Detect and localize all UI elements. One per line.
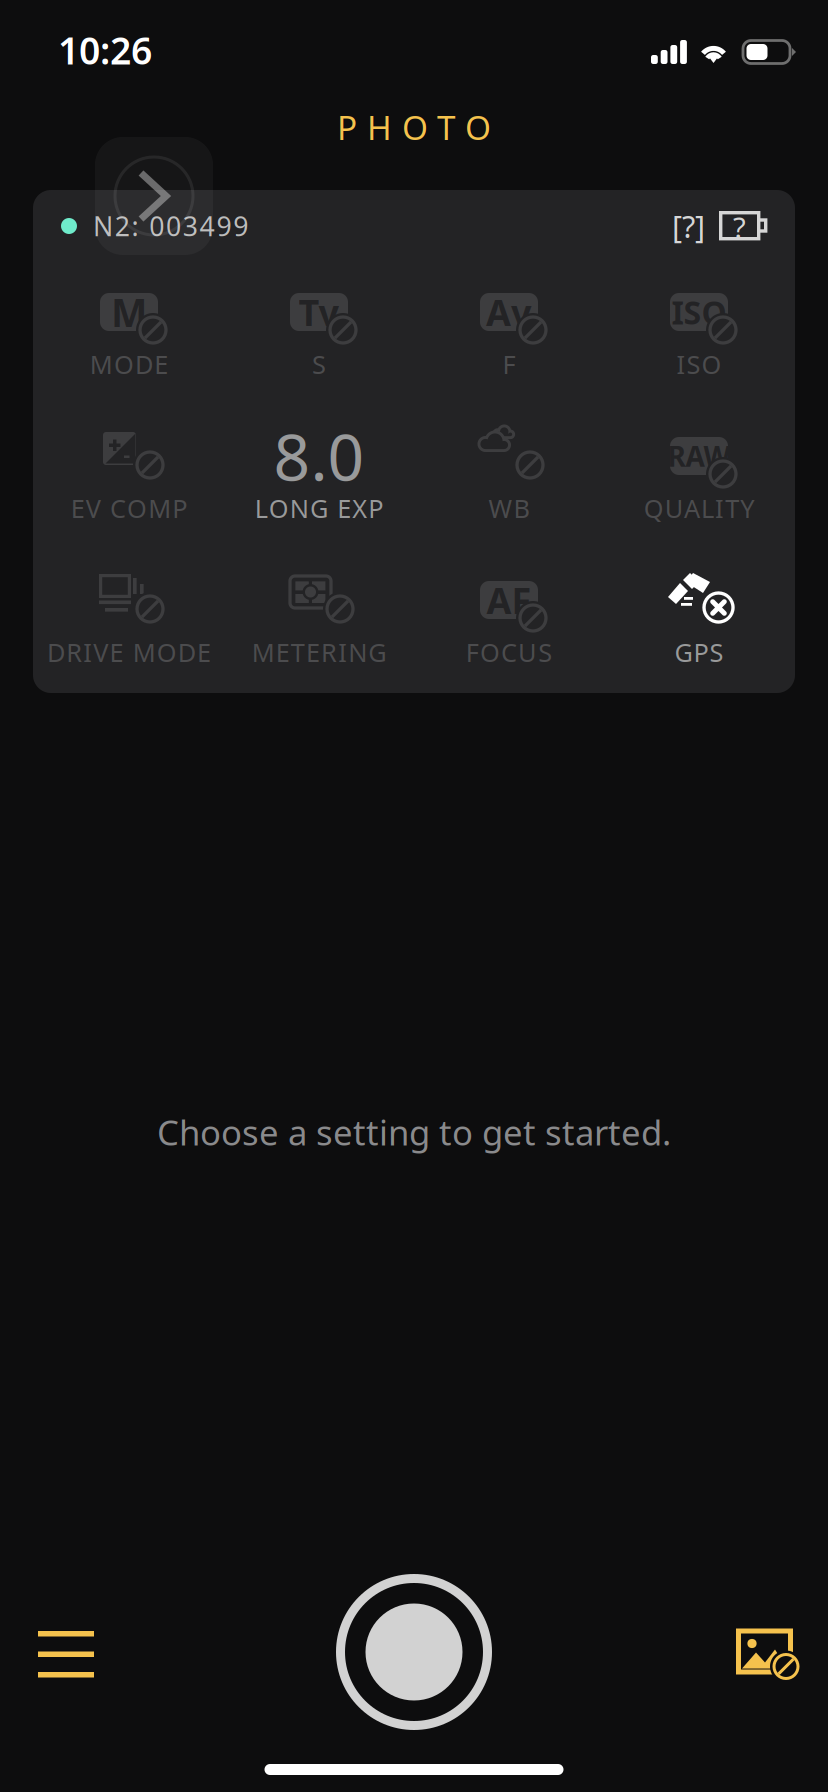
staticText: PHOTO [337,105,491,149]
staticText: N2: 003499 [93,208,248,244]
button[interactable]: M [34,284,224,381]
staticText: DRIVE MODE [47,635,211,669]
staticText: GPS [674,635,724,669]
button[interactable]: DRIVE MODE [34,572,224,669]
staticText: AF [486,576,531,624]
staticText: Av [486,288,532,336]
button[interactable]: AF [414,572,604,669]
staticText: MODE [90,347,168,381]
staticText: S [312,347,326,381]
staticText: ISO [676,347,722,381]
button[interactable]: Tv [224,284,414,381]
staticText: ISO [671,291,726,333]
button[interactable]: Menu [0,1582,140,1722]
staticText: ? [733,207,746,246]
staticText: 10:26 [58,25,152,75]
staticText: F [502,347,515,381]
staticText: FOCUS [466,635,552,669]
staticText: METERING [252,635,386,669]
button[interactable]: Shutter [334,1572,494,1732]
staticText: Tv [298,288,339,336]
staticText: QUALITY [644,491,754,525]
staticText: LONG EXP [255,491,383,525]
button[interactable]: EV COMP [34,428,224,525]
button[interactable]: ISO [604,284,794,381]
staticText: M [111,286,147,338]
staticText: [?] [672,206,705,246]
staticText: EV COMP [71,491,187,525]
button[interactable]: Av [414,284,604,381]
button[interactable]: Gallery [688,1582,828,1722]
button[interactable]: 8.0 [224,428,414,525]
button[interactable]: GPS [604,572,794,669]
button[interactable]: METERING [224,572,414,669]
staticText: RAW [667,437,730,475]
button[interactable]: Expand [95,137,213,255]
staticText: Choose a setting to get started. [157,1109,671,1155]
staticText: 8.0 [273,413,364,498]
button[interactable]: WB [414,428,604,525]
staticText: WB [488,491,530,525]
button[interactable]: RAW [604,428,794,525]
